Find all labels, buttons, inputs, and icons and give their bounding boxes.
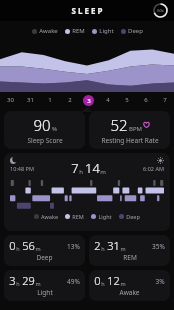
button[interactable]: 1 [40, 92, 60, 108]
staticText: 2 [68, 96, 72, 104]
staticText: 2 [94, 238, 101, 253]
button[interactable]: 90 [4, 111, 85, 149]
button[interactable]: 2 [89, 235, 170, 266]
staticText: 31 [107, 238, 120, 253]
staticText: 7 [71, 159, 79, 177]
staticText: 13% [67, 242, 80, 251]
staticText: 3% [155, 277, 165, 286]
staticText: m [120, 280, 126, 287]
staticText: 49% [67, 277, 80, 286]
button[interactable]: 10:48 PM [4, 153, 170, 231]
staticText: Sleep Score [27, 136, 63, 145]
button[interactable]: 6 [136, 92, 155, 108]
staticText: Light [99, 27, 114, 35]
staticText: 4 [106, 96, 110, 104]
staticText: 29 [22, 273, 35, 288]
button[interactable]: 7 [155, 92, 174, 108]
staticText: 3 [87, 97, 91, 105]
button[interactable]: 3 [4, 270, 85, 301]
staticText: % [52, 125, 57, 133]
staticText: m [120, 245, 126, 252]
staticText: Light [37, 288, 53, 297]
staticText: 6 [144, 96, 148, 104]
staticText: 56 [22, 238, 35, 253]
button[interactable]: 0 [89, 270, 170, 301]
staticText: m [35, 245, 41, 252]
staticText: 3 [9, 273, 16, 288]
button[interactable]: 5 [117, 92, 136, 108]
staticText: REM [72, 213, 84, 220]
button[interactable]: 52 [89, 111, 170, 149]
staticText: h [101, 245, 105, 252]
staticText: h [16, 280, 20, 287]
staticText: 10:48 PM [10, 165, 34, 172]
staticText: 0 [94, 273, 101, 288]
button[interactable]: 0 [4, 235, 85, 266]
staticText: Light [98, 213, 112, 220]
staticText: 52 [110, 115, 128, 135]
staticText: BPM [129, 125, 142, 133]
staticText: Awake [39, 27, 58, 35]
staticText: m [35, 280, 41, 287]
staticText: h [101, 280, 105, 287]
staticText: 7 [163, 96, 167, 104]
staticText: REM [72, 27, 85, 35]
staticText: 30 [7, 96, 14, 104]
staticText: Resting Heart Rate [101, 136, 159, 145]
button[interactable]: 4 [98, 92, 117, 108]
staticText: h [79, 168, 83, 176]
staticText: 12 [107, 273, 120, 288]
button[interactable]: Profile [153, 3, 168, 18]
staticText: h [16, 245, 20, 252]
staticText: Deep [126, 213, 140, 220]
staticText: 0 [9, 238, 16, 253]
staticText: 1 [48, 96, 52, 104]
staticText: 14 [85, 159, 100, 177]
button[interactable]: 31 [20, 92, 40, 108]
staticText: 60s [157, 8, 164, 13]
staticText: 35% [152, 242, 165, 251]
staticText: 6:02 AM [143, 165, 164, 172]
staticText: Deep [128, 27, 143, 35]
staticText: m [100, 168, 106, 176]
button[interactable]: 2 [60, 92, 79, 108]
staticText: Deep [36, 253, 53, 262]
staticText: REM [123, 253, 137, 262]
staticText: S L E E P [71, 5, 103, 16]
button[interactable]: 3 [79, 92, 98, 108]
staticText: Awake [119, 288, 140, 297]
staticText: 31 [27, 96, 34, 104]
staticText: Awake [41, 213, 58, 220]
button[interactable]: 30 [0, 92, 20, 108]
staticText: 5 [125, 96, 129, 104]
staticText: 90 [33, 115, 51, 135]
